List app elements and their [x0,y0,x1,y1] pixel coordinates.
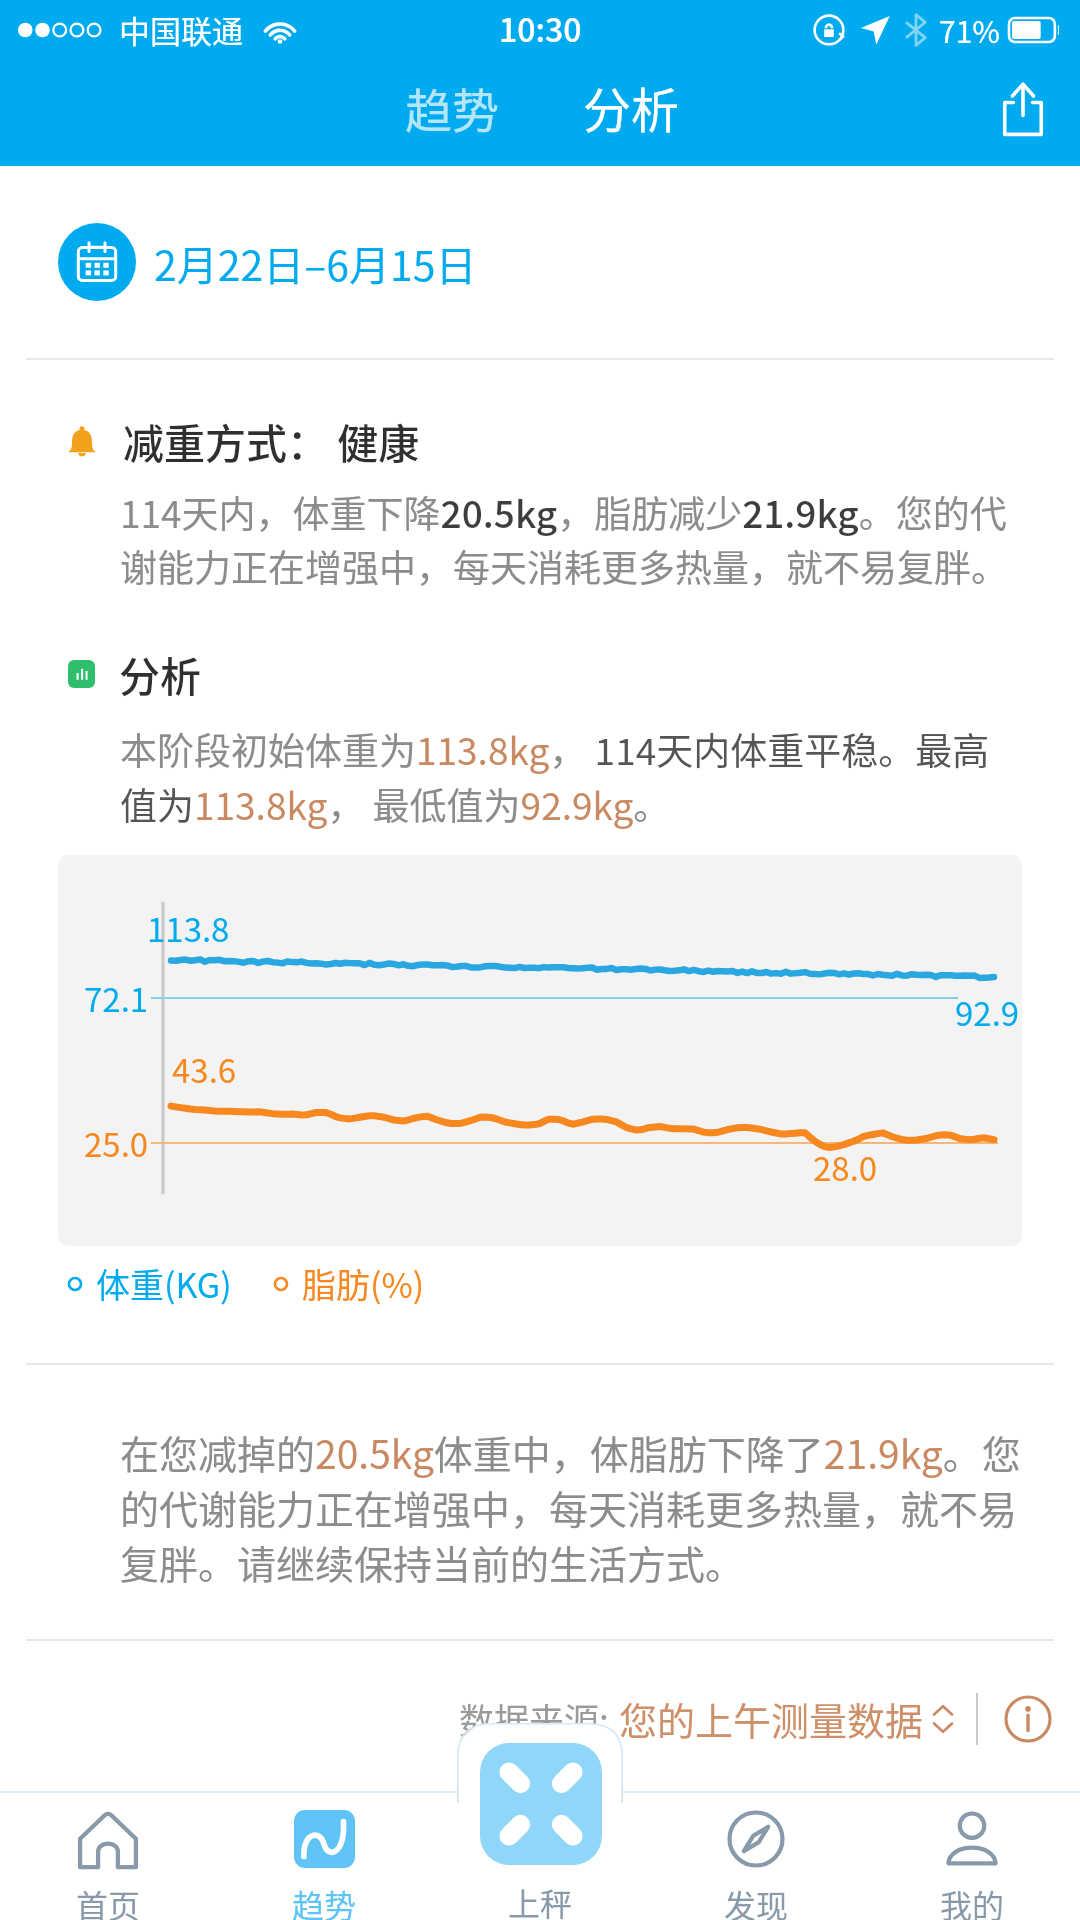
button[interactable]: Share [992,78,1054,140]
staticText: 71% [939,8,1000,51]
staticText: 我的 [940,1881,1005,1920]
staticText: 分析 [119,644,201,703]
staticText: 上秤 [508,1879,573,1920]
button[interactable]: 首页 [0,1810,216,1920]
staticText: 分析 [583,72,680,142]
staticText: 趋势 [292,1881,357,1920]
staticText: 92.9 [955,988,1020,1036]
staticText: 28.0 [813,1143,878,1191]
staticText: 72.1 [84,974,149,1022]
staticText: 在您减掉的20.5kg体重中，体脂肪下降了21.9kg。您的代谢能力正在增强中，… [120,1424,1055,1590]
button[interactable]: Info [1002,1693,1054,1745]
staticText: 25.0 [84,1119,149,1167]
staticText: 113.8 [147,904,230,952]
staticText: 体重(KG) [96,1259,232,1308]
staticText: 本阶段初始体重为113.8kg， 114天内体重平稳。最高值为113.8kg， … [120,722,1022,831]
button[interactable]: 分析 [583,72,680,142]
staticText: 43.6 [172,1045,237,1093]
button[interactable]: 您的上午测量数据 [619,1691,952,1746]
staticText: 脂肪(%) [302,1259,425,1308]
button[interactable]: 上秤 [480,1743,602,1865]
staticText: 您的上午测量数据 [619,1691,924,1746]
staticText: 减重方式： 健康 [123,411,420,470]
button[interactable]: 2月22日–6月15日 [0,207,1080,317]
staticText: 首页 [76,1881,141,1920]
staticText: 趋势 [405,73,499,141]
button[interactable]: 发现 [648,1810,864,1920]
staticText: 2月22日–6月15日 [154,233,477,292]
staticText: 发现 [724,1881,789,1920]
staticText: 中国联通 [119,7,243,52]
staticText: 数据来源: [459,1693,609,1744]
button[interactable]: 趋势 [405,73,499,141]
button[interactable]: 我的 [864,1810,1080,1920]
staticText: 114天内，体重下降20.5kg，脂肪减少21.9kg。您的代谢能力正在增强中，… [120,485,1042,593]
button[interactable]: 趋势 [216,1810,432,1920]
staticText: 10:30 [499,5,582,51]
